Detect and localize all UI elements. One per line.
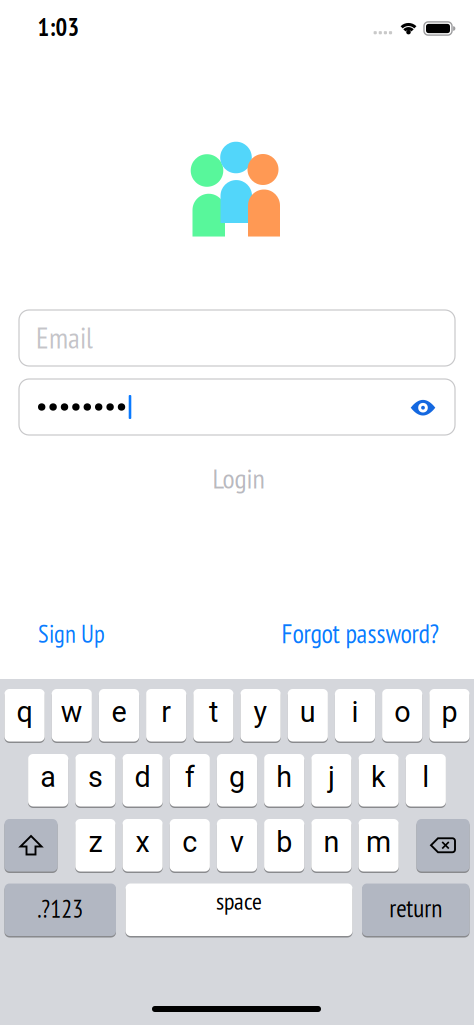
button[interactable]: Shift <box>4 819 57 871</box>
staticText: a <box>40 760 56 794</box>
staticText: i <box>351 695 358 729</box>
staticText: e <box>111 695 126 729</box>
button[interactable]: c <box>170 819 210 871</box>
button[interactable]: w <box>52 689 92 741</box>
staticText: o <box>394 695 410 729</box>
staticText: z <box>88 825 102 859</box>
button[interactable]: x <box>122 819 163 871</box>
staticText: d <box>135 760 151 794</box>
button[interactable]: Delete <box>416 819 469 871</box>
staticText: x <box>136 825 150 859</box>
button[interactable]: Email <box>19 310 455 366</box>
button[interactable]: e <box>99 689 139 741</box>
staticText: b <box>276 825 292 859</box>
staticText: k <box>371 760 386 794</box>
staticText: n <box>323 825 339 859</box>
button[interactable]: a <box>28 754 68 806</box>
staticText: p <box>441 695 457 729</box>
button[interactable]: n <box>311 819 351 871</box>
staticText: Login <box>212 460 264 496</box>
button[interactable]: Sign Up <box>38 617 105 649</box>
button[interactable]: f <box>170 754 210 806</box>
button[interactable]: s <box>75 754 115 806</box>
button[interactable]: v <box>217 819 257 871</box>
button[interactable]: g <box>217 754 257 806</box>
button[interactable]: d <box>122 754 163 806</box>
button[interactable]: z <box>75 819 115 871</box>
staticText: t <box>209 695 218 729</box>
button[interactable]: b <box>264 819 304 871</box>
button[interactable]: .?123 <box>4 883 116 936</box>
staticText: g <box>229 760 245 794</box>
staticText: m <box>366 825 391 859</box>
button[interactable]: r <box>146 689 186 741</box>
staticText: return <box>389 891 442 924</box>
staticText: c <box>182 825 197 859</box>
staticText: .?123 <box>37 893 83 925</box>
button[interactable]: Show password <box>401 388 445 428</box>
button[interactable]: return <box>362 883 469 936</box>
button[interactable]: space <box>125 883 352 936</box>
button[interactable]: i <box>335 689 375 741</box>
button[interactable]: Forgot password? <box>281 616 438 651</box>
staticText: space <box>216 885 262 916</box>
staticText: s <box>88 760 103 794</box>
staticText: u <box>300 695 316 729</box>
button[interactable]: p <box>429 689 469 741</box>
button[interactable]: h <box>264 754 304 806</box>
button[interactable]: m <box>358 819 399 871</box>
staticText: h <box>276 760 292 794</box>
staticText: w <box>61 695 83 729</box>
staticText: Email <box>36 318 93 356</box>
staticText: j <box>328 760 335 794</box>
staticText: 1:03 <box>37 11 79 43</box>
button[interactable]: q <box>4 689 45 741</box>
staticText: Forgot password? <box>281 616 438 651</box>
staticText: y <box>254 695 268 729</box>
button[interactable]: t <box>193 689 233 741</box>
button[interactable]: Login <box>212 460 264 496</box>
staticText: r <box>161 695 171 729</box>
staticText: Sign Up <box>38 617 105 649</box>
button[interactable]: o <box>382 689 422 741</box>
staticText: l <box>422 760 429 794</box>
button[interactable]: y <box>240 689 281 741</box>
button[interactable] <box>19 379 455 435</box>
button[interactable]: k <box>358 754 399 806</box>
staticText: f <box>185 760 195 794</box>
button[interactable]: j <box>311 754 351 806</box>
button[interactable]: u <box>288 689 328 741</box>
button[interactable]: l <box>406 754 446 806</box>
staticText: v <box>230 825 244 859</box>
staticText: q <box>17 695 33 729</box>
